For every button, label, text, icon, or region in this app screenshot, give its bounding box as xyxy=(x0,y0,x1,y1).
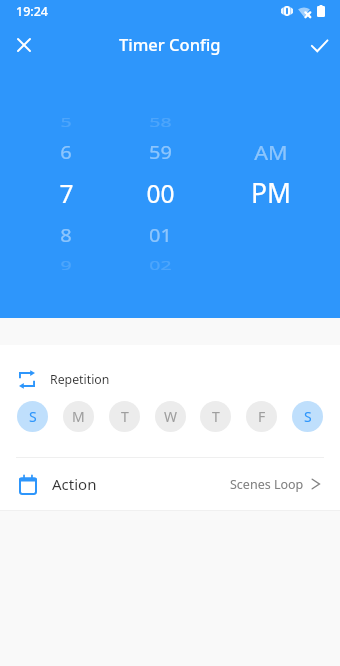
staticText: 01 xyxy=(149,224,172,247)
staticText: 8 xyxy=(60,224,72,247)
staticText: PM xyxy=(251,175,291,211)
button[interactable]: Close xyxy=(0,22,46,68)
staticText: Action xyxy=(52,474,97,494)
staticText: 5 xyxy=(60,114,72,131)
button[interactable]: S xyxy=(292,401,323,432)
button[interactable]: Minute xyxy=(113,80,207,310)
staticText: Timer Config xyxy=(119,33,221,55)
staticText: T xyxy=(121,407,129,426)
staticText: AM xyxy=(254,140,288,165)
staticText: W xyxy=(164,407,178,426)
button[interactable]: AM PM xyxy=(224,80,318,310)
button[interactable]: S xyxy=(17,401,48,432)
button[interactable]: Hour xyxy=(19,80,113,310)
staticText: 9 xyxy=(60,257,72,274)
button[interactable]: Action xyxy=(0,458,340,510)
button[interactable]: W xyxy=(155,401,186,432)
staticText: 7 xyxy=(59,177,74,210)
staticText: Repetition xyxy=(50,371,110,388)
button[interactable]: M xyxy=(63,401,94,432)
staticText: 58 xyxy=(149,114,172,131)
button[interactable]: T xyxy=(109,401,140,432)
staticText: 6 xyxy=(60,141,72,164)
staticText: F xyxy=(258,407,266,426)
staticText: 02 xyxy=(149,257,172,274)
staticText: 00 xyxy=(146,177,175,210)
staticText: T xyxy=(212,407,220,426)
staticText: Scenes Loop xyxy=(230,476,304,493)
button[interactable]: F xyxy=(246,401,277,432)
button[interactable]: Confirm xyxy=(296,22,340,68)
staticText: M xyxy=(72,407,85,426)
button[interactable]: T xyxy=(200,401,231,432)
staticText: 59 xyxy=(149,141,172,164)
staticText: S xyxy=(304,407,312,426)
staticText: 19:24 xyxy=(16,3,49,20)
staticText: S xyxy=(29,407,37,426)
